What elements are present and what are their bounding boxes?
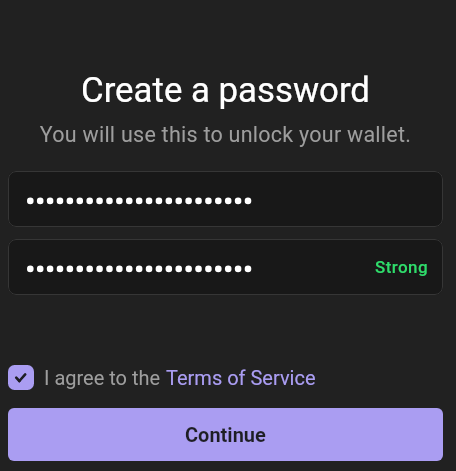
button[interactable]: Strong [8,239,443,295]
staticText: You will use this to unlock your wallet. [8,122,443,147]
button[interactable]: Continue [8,408,443,461]
staticText: I agree to the [44,366,166,389]
staticText: Strong [375,257,429,277]
other: Agree to terms checkbox [8,365,34,390]
staticText: Continue [185,423,266,446]
button[interactable]: Terms of Service [166,366,316,389]
staticText: Create a password [8,70,443,111]
button[interactable] [8,171,443,227]
button[interactable]: Agree to terms checkbox [8,364,443,390]
